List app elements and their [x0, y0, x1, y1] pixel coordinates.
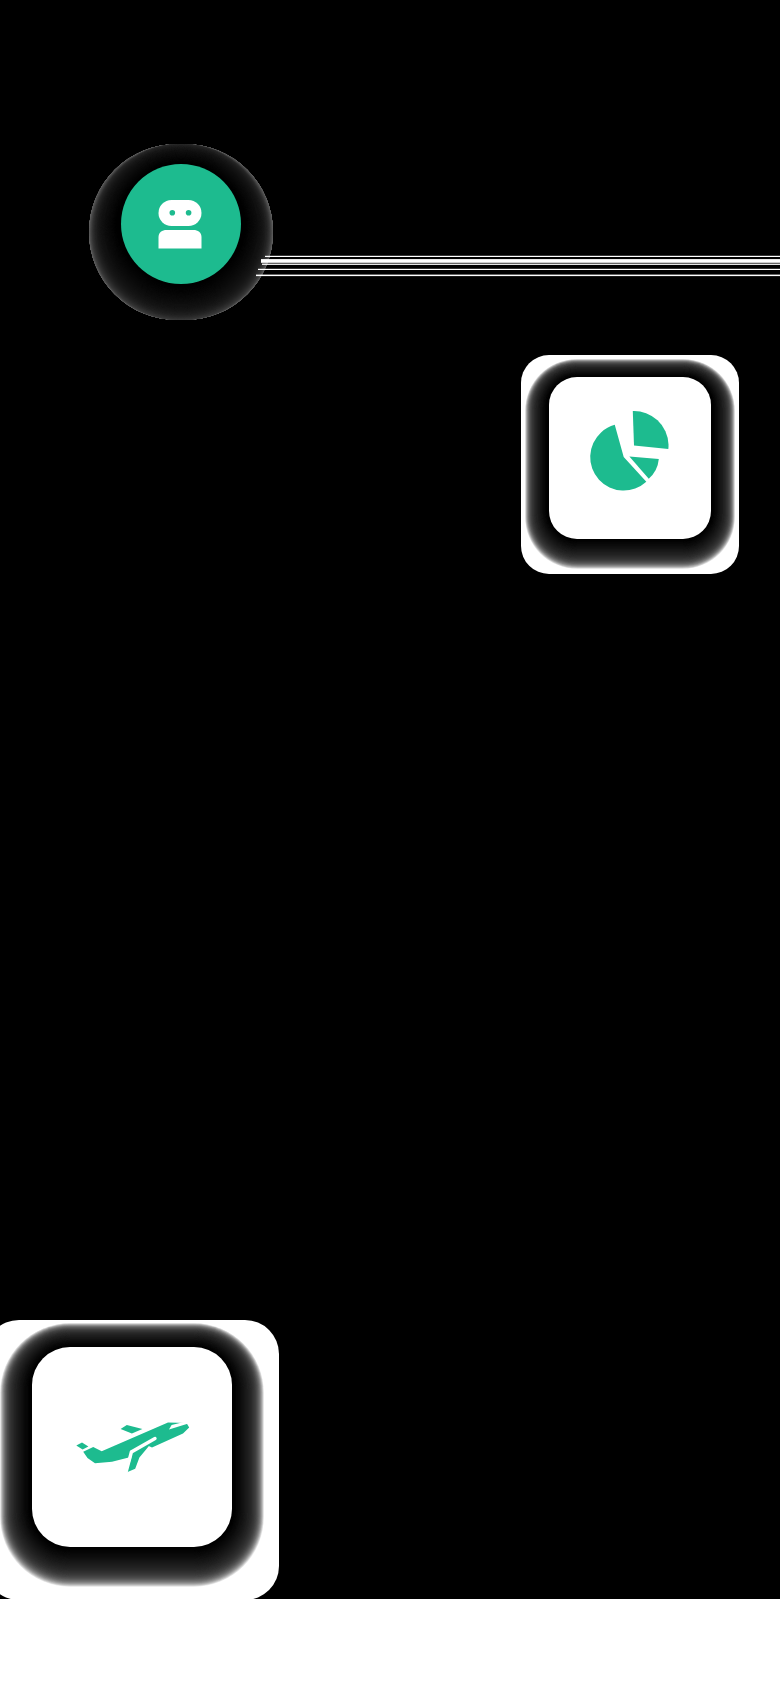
button[interactable]: Assistant — [121, 164, 241, 284]
button[interactable]: Statistics — [549, 377, 711, 539]
button[interactable]: Flights — [32, 1347, 232, 1547]
